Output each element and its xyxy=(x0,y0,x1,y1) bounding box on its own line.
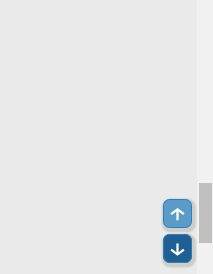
button[interactable]: Scroll to bottom xyxy=(163,234,192,263)
button[interactable]: Scroll to top xyxy=(163,199,192,228)
